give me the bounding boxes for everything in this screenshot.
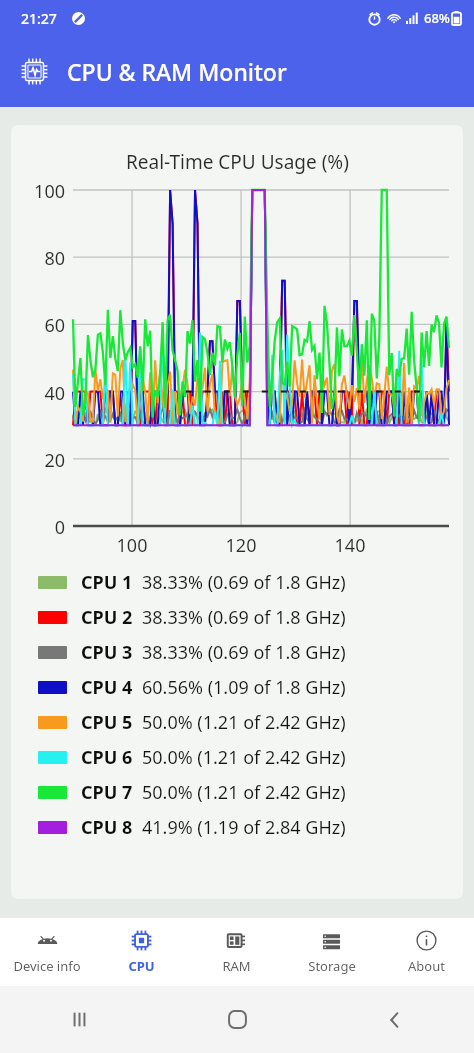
staticText: 60.56% (1.09 of 1.8 GHz): [142, 675, 346, 700]
button[interactable]: Back: [385, 1010, 405, 1030]
staticText: CPU 4: [81, 675, 133, 700]
staticText: 80: [11, 246, 65, 271]
staticText: CPU 3: [81, 640, 133, 665]
button[interactable]: RAM: [189, 918, 284, 986]
staticText: 120: [219, 533, 263, 558]
staticText: 100: [11, 179, 65, 204]
staticText: CPU: [128, 957, 155, 975]
staticText: 60: [11, 313, 65, 338]
staticText: CPU 5: [81, 710, 133, 735]
staticText: 38.33% (0.69 of 1.8 GHz): [142, 640, 346, 665]
other: CPU monitor: [20, 57, 49, 86]
button[interactable]: Home: [227, 1009, 248, 1030]
staticText: 41.9% (1.19 of 2.84 GHz): [142, 815, 346, 840]
staticText: Storage: [308, 957, 356, 975]
staticText: 38.33% (0.69 of 1.8 GHz): [142, 605, 346, 630]
button[interactable]: CPU 5: [11, 705, 463, 740]
staticText: 40: [11, 381, 65, 406]
staticText: CPU & RAM Monitor: [67, 56, 287, 87]
button[interactable]: CPU 8: [11, 810, 463, 845]
button[interactable]: CPU 1: [11, 565, 463, 600]
staticText: 50.0% (1.21 of 2.42 GHz): [142, 780, 346, 805]
button[interactable]: CPU 6: [11, 740, 463, 775]
staticText: CPU 8: [81, 815, 133, 840]
staticText: Device info: [13, 957, 81, 975]
staticText: 20: [11, 448, 65, 473]
staticText: 38.33% (0.69 of 1.8 GHz): [142, 570, 346, 595]
staticText: 140: [328, 533, 372, 558]
button[interactable]: CPU 3: [11, 635, 463, 670]
button[interactable]: CPU: [94, 918, 189, 986]
staticText: 50.0% (1.21 of 2.42 GHz): [142, 745, 346, 770]
staticText: 68%: [424, 9, 450, 27]
staticText: 0: [11, 515, 65, 540]
button[interactable]: CPU 2: [11, 600, 463, 635]
button[interactable]: CPU 7: [11, 775, 463, 810]
button[interactable]: Device info: [0, 918, 94, 986]
staticText: 21:27: [21, 9, 57, 28]
staticText: CPU 7: [81, 780, 133, 805]
staticText: 100: [110, 533, 154, 558]
staticText: 50.0% (1.21 of 2.42 GHz): [142, 710, 346, 735]
button[interactable]: CPU 4: [11, 670, 463, 705]
staticText: CPU 1: [81, 570, 133, 595]
button[interactable]: Storage: [284, 918, 379, 986]
staticText: About: [408, 957, 445, 975]
button[interactable]: About: [379, 918, 474, 986]
staticText: CPU 6: [81, 745, 133, 770]
staticText: RAM: [222, 957, 251, 975]
button[interactable]: Recents: [70, 1010, 89, 1029]
staticText: CPU 2: [81, 605, 133, 630]
staticText: Real-Time CPU Usage (%): [126, 149, 349, 175]
